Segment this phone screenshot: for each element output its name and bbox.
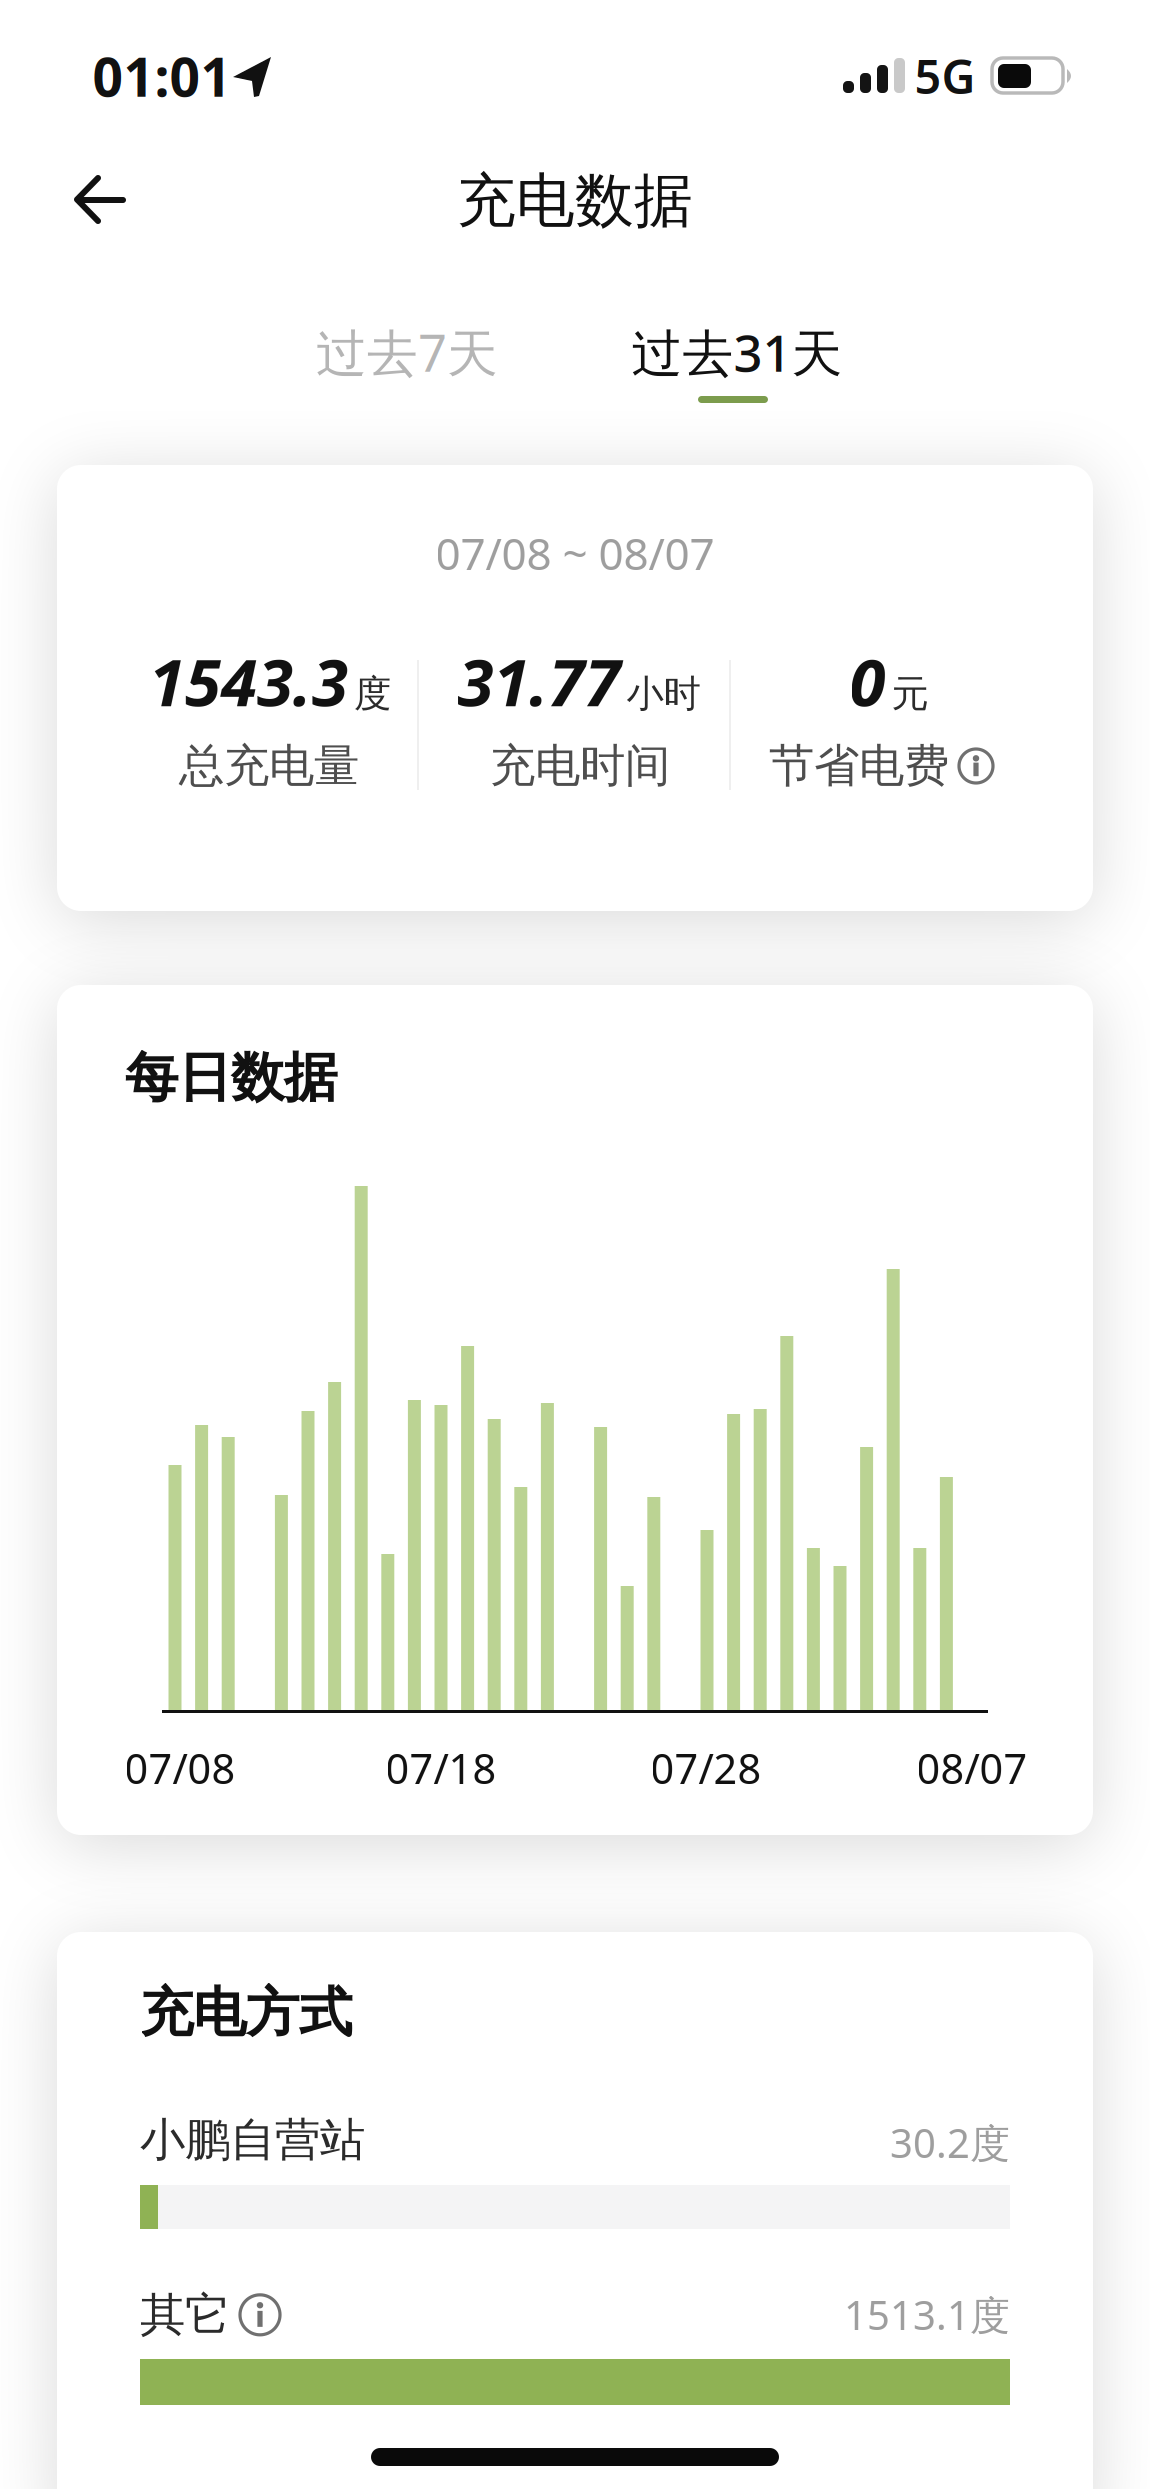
staticText: 充电时间 [490, 738, 670, 794]
button[interactable] [240, 2295, 280, 2335]
staticText: 过去31天 [631, 318, 842, 386]
staticText: 节省电费 [769, 738, 949, 794]
staticText: 其它 [140, 2287, 230, 2343]
button[interactable] [959, 749, 993, 783]
staticText: 30.2度 [890, 2116, 1010, 2169]
button[interactable]: 过去31天 [597, 307, 877, 397]
staticText: 元 [891, 671, 928, 717]
staticText: 1543.3 [149, 638, 348, 724]
button[interactable] [50, 150, 150, 250]
staticText: 07/18 [385, 1741, 496, 1795]
staticText: 5G [914, 45, 975, 107]
staticText: 充电数据 [457, 165, 693, 237]
staticText: 07/08 [124, 1741, 235, 1795]
staticText: 08/07 [916, 1741, 1027, 1795]
staticText: 度 [354, 671, 391, 717]
staticText: 过去7天 [316, 318, 498, 386]
staticText: 07/08 ~ 08/07 [435, 524, 714, 582]
staticText: 小鹏自营站 [140, 2112, 365, 2168]
staticText: 充电方式 [140, 1980, 352, 2045]
staticText: 31.77 [457, 638, 620, 724]
staticText: 每日数据 [125, 1045, 337, 1110]
button[interactable]: 过去7天 [277, 307, 537, 397]
staticText: 07/28 [650, 1741, 761, 1795]
staticText: 小时 [626, 671, 700, 717]
staticText: 总充电量 [179, 738, 359, 794]
staticText: 0 [849, 638, 885, 724]
staticText: 1513.1度 [844, 2288, 1010, 2341]
staticText: 01:01 [92, 41, 231, 111]
